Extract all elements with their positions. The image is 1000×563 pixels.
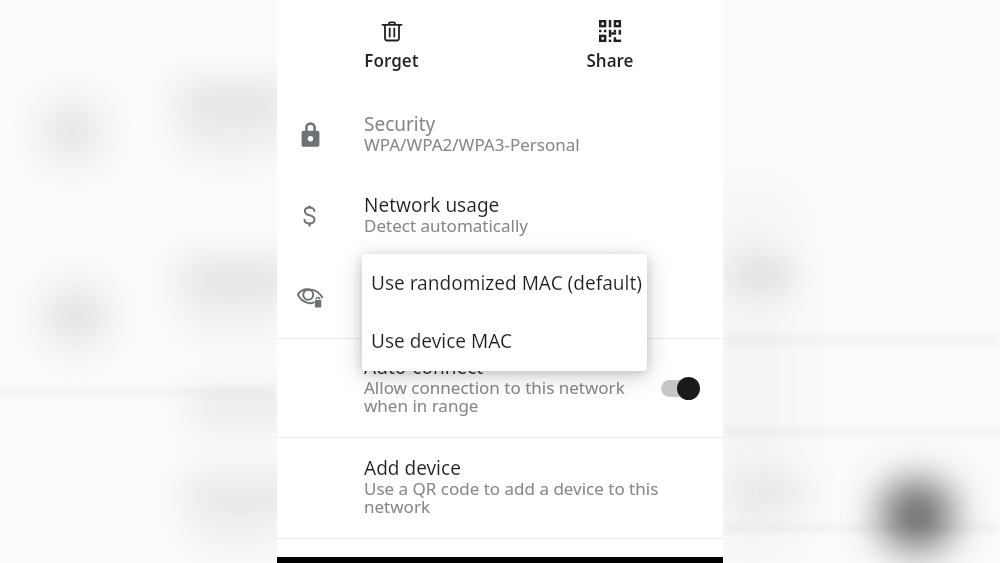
button[interactable]: Privacy <box>277 257 723 338</box>
button[interactable]: Use device MAC <box>362 312 647 370</box>
staticText: Use a QR code to add a device to this ne… <box>364 477 664 518</box>
button[interactable]: Use randomized MAC (default) <box>362 254 647 312</box>
staticText: Share <box>586 49 634 72</box>
staticText: Privacy <box>364 273 428 299</box>
staticText: Security <box>364 111 436 137</box>
button[interactable]: Forget network <box>277 0 500 95</box>
staticText: Use randomized MAC (default) <box>371 270 643 296</box>
button[interactable]: Auto-connect toggle <box>661 377 700 400</box>
other: Forget network <box>381 20 403 42</box>
staticText: WPA/WPA2/WPA3-Personal <box>364 133 580 156</box>
staticText: Use device MAC <box>371 328 512 354</box>
staticText: Allow connection to this network when in… <box>364 376 634 417</box>
other: Share network QR code <box>599 20 621 42</box>
staticText: Detect automatically <box>364 214 528 237</box>
staticText: Auto-connect <box>364 354 484 380</box>
staticText: Add device <box>364 455 461 481</box>
button[interactable]: Auto-connect <box>277 339 723 437</box>
staticText: Forget <box>364 49 419 72</box>
button[interactable]: Share network QR code <box>500 0 723 95</box>
button[interactable]: Network usage <box>277 176 723 257</box>
button[interactable]: Security <box>277 95 723 176</box>
button[interactable]: Add device <box>277 438 723 538</box>
staticText: Network usage <box>364 192 500 218</box>
